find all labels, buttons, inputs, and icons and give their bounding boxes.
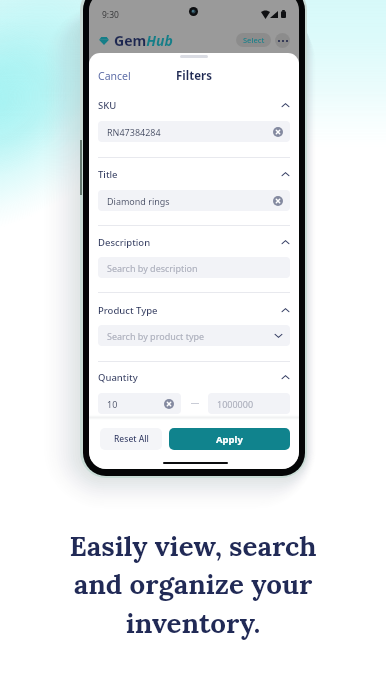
button[interactable]: Quantity [98,371,290,384]
staticText: GemHub [114,31,173,50]
staticText: Title [98,168,118,181]
staticText: Easily view, search and organize your in… [69,528,317,641]
staticText: 9:30 [102,9,119,21]
button[interactable]: More options [275,33,290,48]
staticText: Reset All [114,433,149,445]
staticText: 1000000 [217,398,254,410]
button[interactable]: Description [98,236,290,249]
staticText: Search by description [107,262,198,274]
button[interactable]: Clear [273,196,283,206]
button[interactable]: Cancel [98,69,131,83]
button[interactable]: 10 [98,393,181,414]
button[interactable]: Clear [164,399,174,409]
button[interactable]: RN47384284 [98,121,290,142]
staticText: RN47384284 [107,126,161,138]
button[interactable]: Search by description [98,257,290,278]
staticText: Filters [176,68,212,84]
staticText: Quantity [98,371,138,384]
button[interactable]: Select [236,33,271,47]
button[interactable]: Product Type [98,304,290,317]
button[interactable]: Apply [169,428,290,450]
button[interactable]: 1000000 [208,393,290,414]
button[interactable]: Clear [273,127,283,137]
button[interactable]: SKU [98,99,290,112]
staticText: Search by product type [107,330,205,342]
button[interactable]: Title [98,168,290,181]
button[interactable]: Diamond rings [98,190,290,211]
staticText: Description [98,236,151,249]
staticText: Select [243,35,265,45]
staticText: SKU [98,99,117,112]
staticText: Diamond rings [107,195,170,207]
button[interactable]: Search by product type [98,325,290,346]
button[interactable]: Reset All [100,428,162,450]
staticText: 10 [107,398,118,410]
staticText: Product Type [98,304,158,317]
staticText: Apply [216,433,243,446]
